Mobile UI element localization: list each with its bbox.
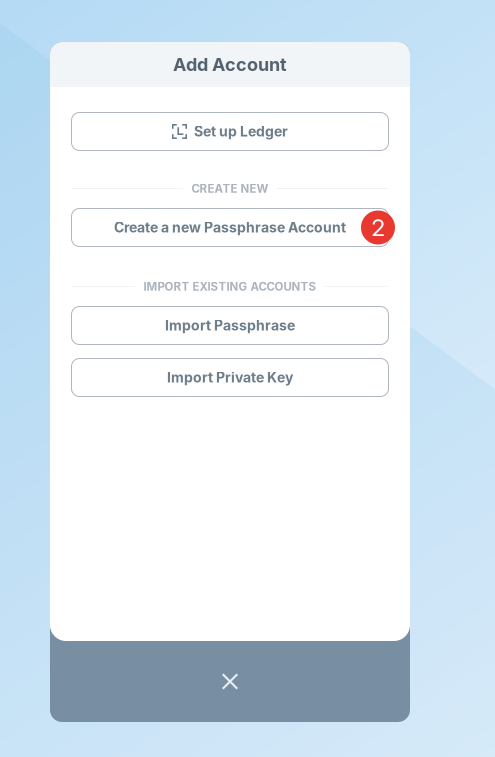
button[interactable]: Close	[50, 641, 410, 722]
staticText: Create a new Passphrase Account	[114, 219, 346, 236]
button[interactable]: 2 accounts pending	[361, 210, 395, 244]
button[interactable]: Set up Ledger	[71, 112, 389, 151]
staticText: Set up Ledger	[194, 123, 288, 140]
staticText: IMPORT EXISTING ACCOUNTS	[143, 280, 316, 293]
button[interactable]: Import Private Key	[71, 358, 389, 397]
staticText: Import Private Key	[167, 369, 293, 386]
staticText: CREATE NEW	[191, 182, 268, 195]
staticText: 2	[371, 213, 385, 242]
staticText: Import Passphrase	[165, 317, 295, 334]
button[interactable]: Import Passphrase	[71, 306, 389, 345]
staticText: Add Account	[173, 54, 287, 75]
button[interactable]: Create a new Passphrase Account	[71, 208, 389, 247]
